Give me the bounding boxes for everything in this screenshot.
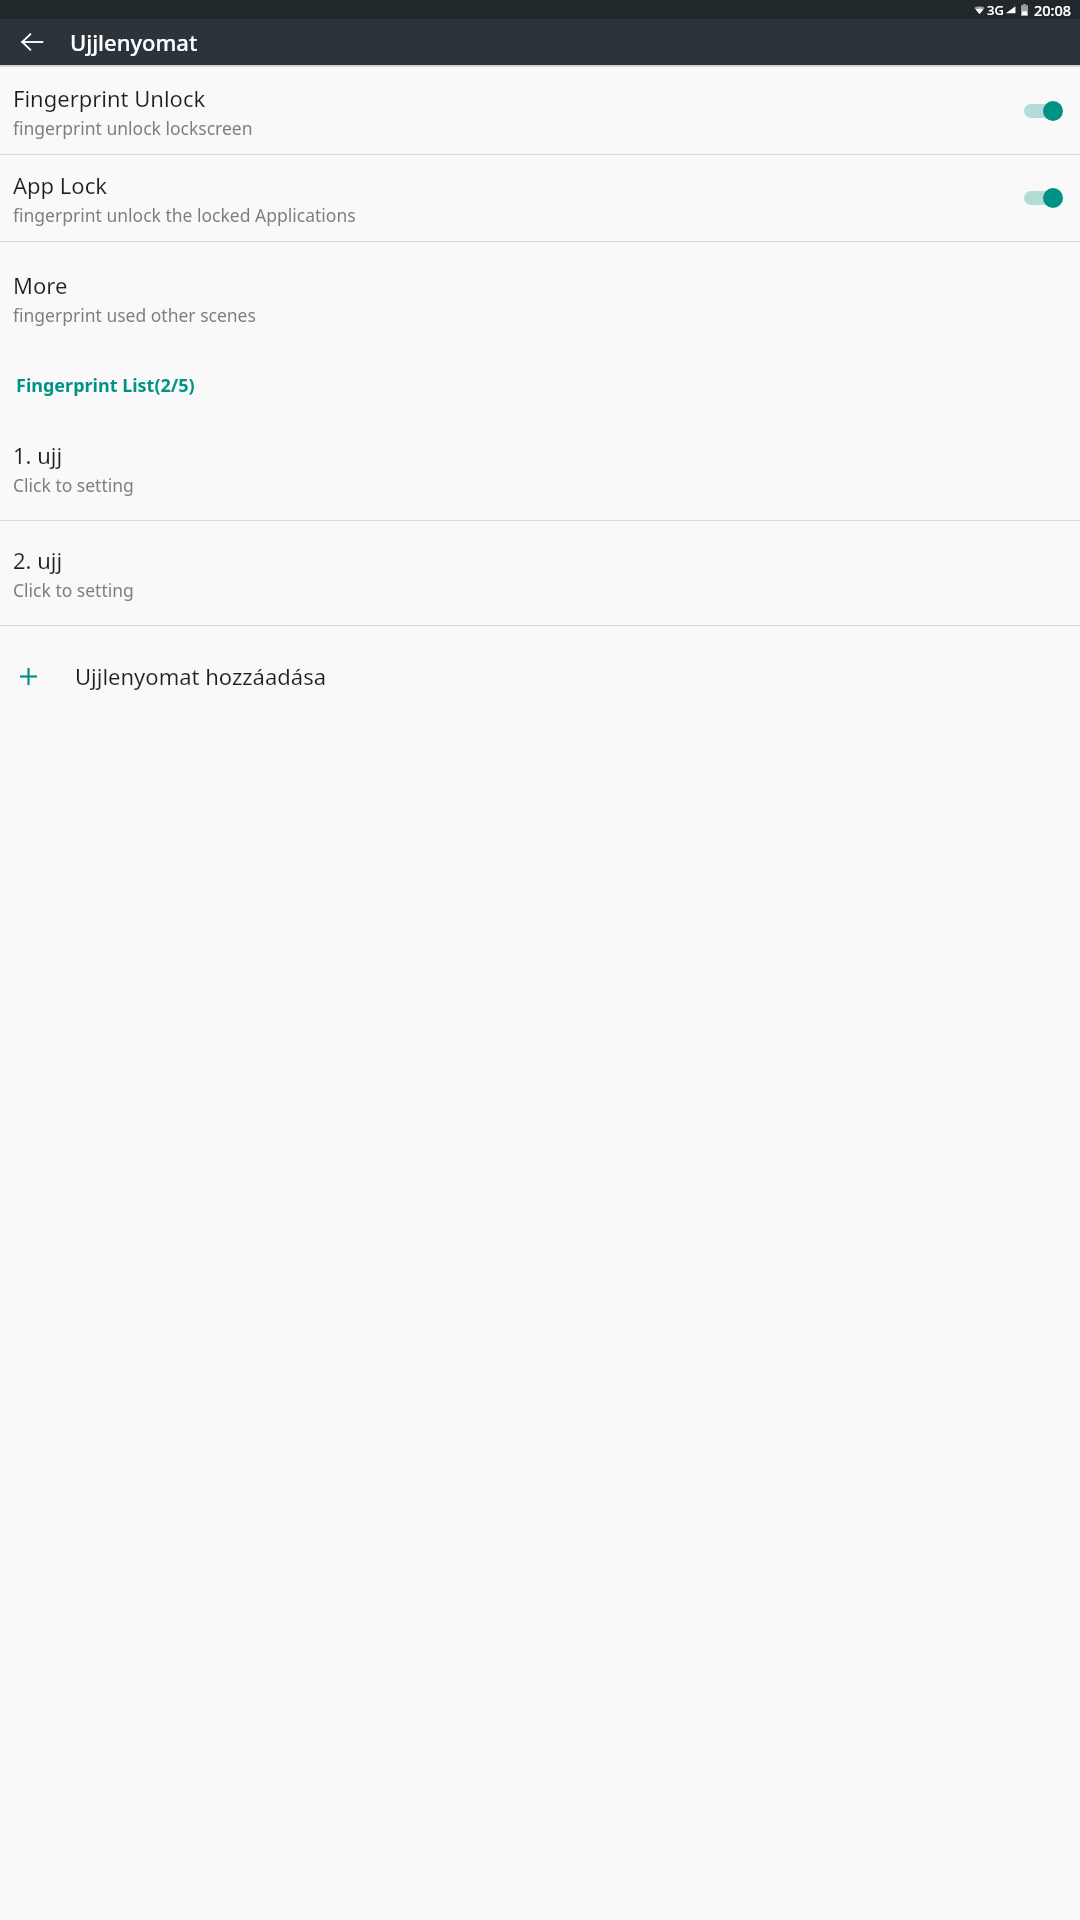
button[interactable]: Back	[8, 19, 56, 65]
button[interactable]: App Lock	[0, 155, 1080, 241]
staticText: 20:08	[1034, 0, 1072, 19]
staticText: Click to setting	[13, 473, 134, 497]
staticText: Ujjlenyomat hozzáadása	[75, 661, 327, 691]
staticText: fingerprint unlock lockscreen	[13, 116, 253, 140]
staticText: fingerprint unlock the locked Applicatio…	[13, 203, 356, 227]
button[interactable]: 2. ujj	[0, 521, 1080, 625]
staticText: fingerprint used other scenes	[13, 303, 256, 327]
button[interactable]: More	[0, 242, 1080, 354]
staticText: 1. ujj	[13, 440, 63, 470]
button[interactable]: Ujjlenyomat hozzáadása	[0, 626, 1080, 726]
staticText: 2. ujj	[13, 545, 63, 575]
staticText: 3G	[987, 1, 1004, 19]
staticText: App Lock	[13, 170, 107, 200]
staticText: Click to setting	[13, 578, 134, 602]
staticText: More	[13, 270, 68, 300]
staticText: Ujjlenyomat	[70, 27, 198, 57]
staticText: Fingerprint List(2/5)	[16, 373, 195, 398]
button[interactable]: Fingerprint Unlock	[0, 68, 1080, 154]
staticText: Fingerprint Unlock	[13, 83, 206, 113]
button[interactable]: 1. ujj	[0, 416, 1080, 520]
